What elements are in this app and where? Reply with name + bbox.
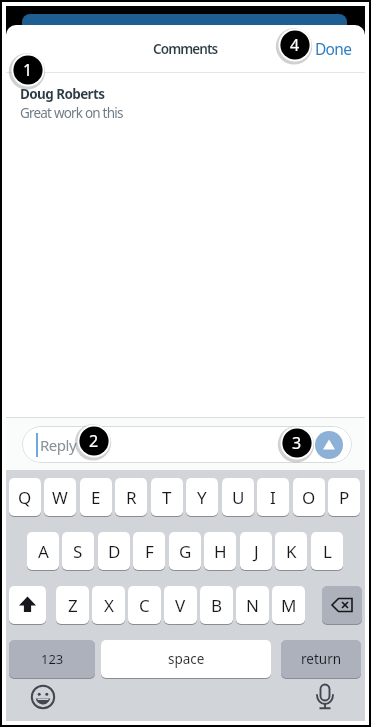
button[interactable]: C <box>128 586 161 624</box>
button[interactable]: S <box>62 532 94 570</box>
staticText: I <box>270 486 276 509</box>
staticText: H <box>214 540 227 563</box>
button[interactable]: I <box>257 478 289 516</box>
button[interactable]: A <box>27 532 59 570</box>
button[interactable]: G <box>169 532 201 570</box>
staticText: Done <box>315 38 352 59</box>
staticText: R <box>126 486 137 509</box>
button[interactable]: M <box>272 586 305 624</box>
staticText: V <box>175 594 186 617</box>
button[interactable]: T <box>151 478 183 516</box>
button[interactable]: U <box>222 478 254 516</box>
staticText: Comments <box>153 40 218 58</box>
button[interactable]: K <box>275 532 307 570</box>
button[interactable] <box>322 586 362 624</box>
button[interactable]: P <box>328 478 360 516</box>
staticText: S <box>73 540 83 563</box>
button[interactable]: O <box>293 478 325 516</box>
staticText: J <box>254 540 259 563</box>
staticText: M <box>281 594 297 617</box>
button[interactable]: space <box>101 640 271 678</box>
button[interactable] <box>9 586 46 624</box>
staticText: W <box>52 486 68 509</box>
staticText: return <box>301 650 342 668</box>
staticText: D <box>108 540 121 563</box>
staticText: 2 <box>89 430 99 452</box>
staticText: Great work on this <box>20 104 123 122</box>
button[interactable]: return <box>281 640 361 678</box>
button[interactable]: D <box>98 532 130 570</box>
button[interactable]: W <box>44 478 76 516</box>
staticText: G <box>179 540 192 563</box>
staticText: U <box>232 486 245 509</box>
staticText: B <box>211 594 223 617</box>
button[interactable]: V <box>164 586 197 624</box>
staticText: 4 <box>290 34 300 56</box>
staticText: 123 <box>41 650 64 668</box>
button[interactable]: Z <box>56 586 89 624</box>
staticText: O <box>302 486 316 509</box>
button[interactable]: Reply <box>22 426 352 463</box>
button[interactable] <box>315 431 343 459</box>
button[interactable]: X <box>92 586 125 624</box>
staticText: Doug Roberts <box>20 85 105 103</box>
staticText: X <box>104 594 114 617</box>
button[interactable]: R <box>115 478 147 516</box>
staticText: 3 <box>292 432 302 454</box>
button[interactable]: 123 <box>9 640 95 678</box>
staticText: L <box>323 540 332 563</box>
staticText: T <box>162 486 172 509</box>
staticText: A <box>38 540 49 563</box>
button[interactable] <box>311 683 339 711</box>
button[interactable]: Y <box>186 478 218 516</box>
button[interactable]: N <box>236 586 269 624</box>
button[interactable]: H <box>204 532 236 570</box>
staticText: K <box>286 540 297 563</box>
button[interactable]: Done <box>315 38 352 59</box>
staticText: 1 <box>23 59 33 81</box>
button[interactable]: B <box>200 586 233 624</box>
staticText: F <box>145 540 154 563</box>
button[interactable] <box>29 683 57 711</box>
button[interactable]: Q <box>9 478 41 516</box>
staticText: Z <box>68 594 78 617</box>
staticText: space <box>168 650 205 668</box>
button[interactable]: F <box>133 532 165 570</box>
staticText: Y <box>197 486 207 509</box>
button[interactable]: E <box>80 478 112 516</box>
button[interactable]: L <box>311 532 343 570</box>
staticText: N <box>246 594 259 617</box>
staticText: Reply <box>40 435 77 455</box>
staticText: E <box>91 486 101 509</box>
staticText: C <box>139 594 150 617</box>
staticText: P <box>339 486 350 509</box>
staticText: Q <box>18 486 32 509</box>
button[interactable]: J <box>240 532 272 570</box>
